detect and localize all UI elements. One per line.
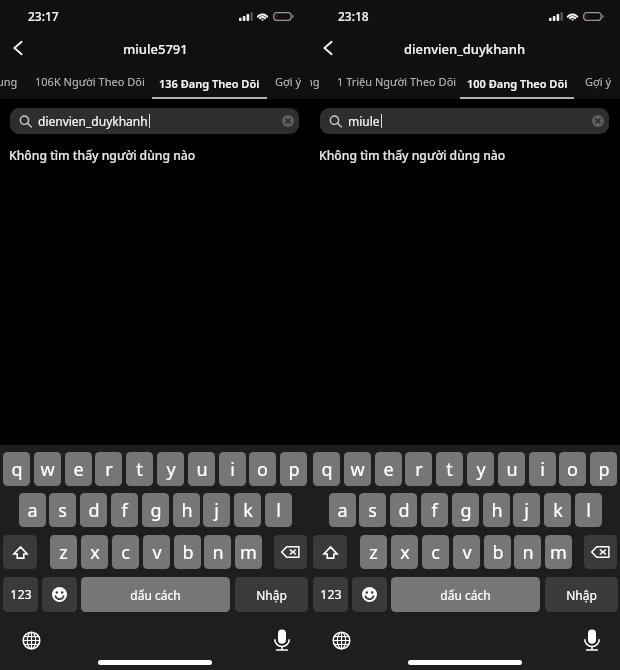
button[interactable]: n	[204, 535, 231, 569]
button[interactable]: a	[329, 493, 356, 527]
button[interactable]: v	[453, 535, 480, 569]
button[interactable]: w	[34, 452, 61, 486]
button[interactable]: dienvien_duykhanh	[10, 108, 299, 134]
button[interactable]: 123	[3, 577, 38, 612]
staticText: i	[540, 457, 545, 482]
button[interactable]: h	[483, 493, 510, 527]
button[interactable]: h	[173, 493, 200, 527]
button[interactable]: y	[157, 452, 184, 486]
button[interactable]: r	[95, 452, 122, 486]
button[interactable]: miule	[320, 108, 609, 134]
button[interactable]: v	[143, 535, 170, 569]
staticText: ung	[0, 74, 18, 89]
button[interactable]: g	[452, 493, 479, 527]
button[interactable]: n	[514, 535, 541, 569]
button[interactable]: Backspace	[274, 535, 307, 569]
button[interactable]: Shift	[3, 535, 37, 569]
staticText: x	[90, 540, 100, 565]
staticText: 100 Đang Theo Dõi	[467, 76, 568, 91]
button[interactable]: d	[390, 493, 417, 527]
button[interactable]: q	[313, 452, 340, 486]
button[interactable]: 123	[313, 577, 348, 612]
button[interactable]: Nhập	[235, 577, 308, 612]
button[interactable]: 100 Đang Theo Dõi	[460, 76, 574, 99]
button[interactable]: l	[575, 493, 602, 527]
button[interactable]: w	[344, 452, 371, 486]
button[interactable]: f	[111, 493, 138, 527]
button[interactable]: Clear text	[281, 114, 295, 128]
button[interactable]: o	[559, 452, 586, 486]
button[interactable]: ng	[310, 76, 312, 99]
staticText: 136 Đang Theo Dõi	[159, 76, 260, 91]
button[interactable]: 136 Đang Theo Dõi	[152, 76, 267, 99]
button[interactable]: Emoji keyboard	[42, 577, 77, 612]
button[interactable]: u	[188, 452, 215, 486]
button[interactable]: k	[544, 493, 571, 527]
button[interactable]: m	[235, 535, 262, 569]
button[interactable]: j	[513, 493, 540, 527]
button[interactable]: t	[126, 452, 153, 486]
button[interactable]: k	[234, 493, 261, 527]
button[interactable]: s	[359, 493, 386, 527]
staticText: e	[73, 457, 84, 482]
button[interactable]: Backspace	[584, 535, 617, 569]
button[interactable]: Dictate	[270, 629, 293, 652]
button[interactable]: y	[467, 452, 494, 486]
staticText: z	[369, 540, 378, 565]
staticText: x	[400, 540, 410, 565]
staticText: v	[462, 540, 472, 565]
button[interactable]: q	[3, 452, 30, 486]
button[interactable]: l	[265, 493, 292, 527]
button[interactable]: a	[19, 493, 46, 527]
staticText: f	[431, 498, 438, 523]
button[interactable]: ung	[0, 76, 10, 99]
button[interactable]: Emoji keyboard	[352, 577, 387, 612]
button[interactable]: Back	[4, 34, 32, 62]
button[interactable]: p	[590, 452, 617, 486]
button[interactable]: b	[484, 535, 511, 569]
button[interactable]: z	[360, 535, 387, 569]
button[interactable]: Nhập	[545, 577, 618, 612]
button[interactable]: o	[249, 452, 276, 486]
button[interactable]: dấu cách	[81, 577, 230, 612]
button[interactable]: u	[498, 452, 525, 486]
button[interactable]: t	[436, 452, 463, 486]
button[interactable]: s	[49, 493, 76, 527]
button[interactable]: p	[280, 452, 307, 486]
button[interactable]: j	[203, 493, 230, 527]
button[interactable]: m	[545, 535, 572, 569]
staticText: w	[350, 457, 365, 482]
button[interactable]: c	[422, 535, 449, 569]
button[interactable]: g	[142, 493, 169, 527]
staticText: l	[586, 498, 591, 523]
button[interactable]: e	[375, 452, 402, 486]
button[interactable]: Back	[314, 34, 342, 62]
button[interactable]: 1 Triệu Người Theo Dõi	[329, 76, 449, 99]
button[interactable]: Switch keyboard language	[21, 630, 41, 650]
button[interactable]: f	[421, 493, 448, 527]
staticText: 23:17	[28, 8, 59, 24]
button[interactable]: Shift	[313, 535, 347, 569]
button[interactable]: Dictate	[580, 629, 603, 652]
button[interactable]: x	[391, 535, 418, 569]
button[interactable]: i	[219, 452, 246, 486]
button[interactable]: x	[81, 535, 108, 569]
button[interactable]: Clear text	[591, 114, 605, 128]
button[interactable]: dấu cách	[391, 577, 540, 612]
button[interactable]: z	[50, 535, 77, 569]
button[interactable]: Switch keyboard language	[331, 630, 351, 650]
button[interactable]: d	[80, 493, 107, 527]
button[interactable]: 106K Người Theo Dõi	[27, 76, 137, 99]
button[interactable]: r	[405, 452, 432, 486]
button[interactable]: Gợi ý	[577, 76, 620, 99]
button[interactable]: b	[174, 535, 201, 569]
staticText: d	[88, 498, 100, 523]
button[interactable]: i	[529, 452, 556, 486]
staticText: b	[492, 540, 504, 565]
button[interactable]: Gợi ý	[267, 76, 310, 99]
button[interactable]: c	[112, 535, 139, 569]
staticText: r	[105, 457, 113, 482]
staticText: j	[524, 498, 529, 523]
staticText: ng	[310, 74, 320, 89]
button[interactable]: e	[65, 452, 92, 486]
